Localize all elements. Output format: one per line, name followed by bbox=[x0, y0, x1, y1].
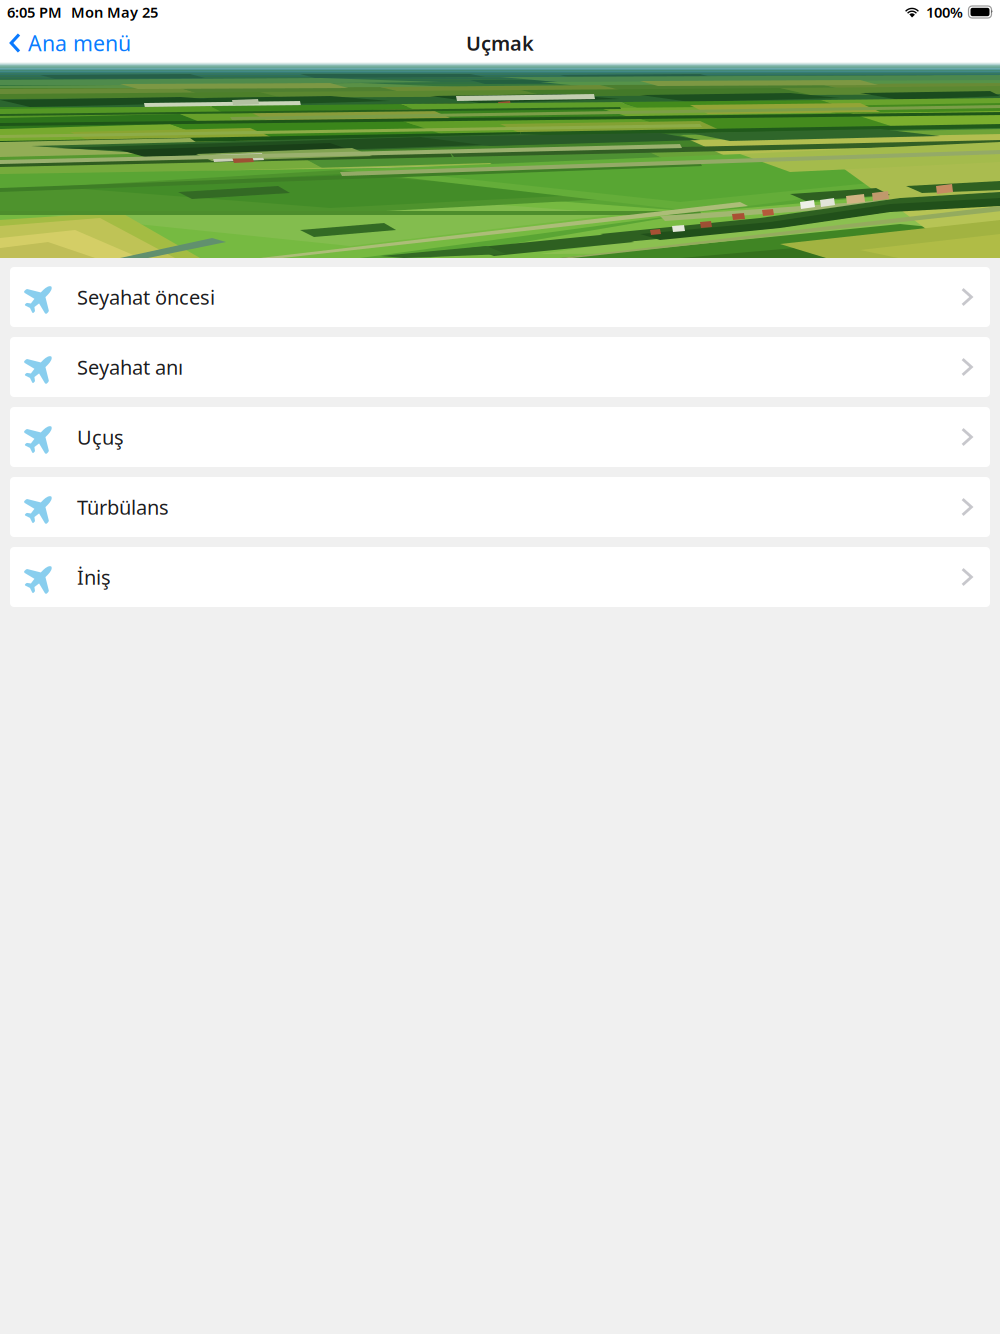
staticText: Mon May 25 bbox=[71, 2, 158, 22]
staticText: 100% bbox=[926, 2, 963, 22]
staticText: Uçuş bbox=[77, 424, 124, 450]
staticText: Türbülans bbox=[77, 494, 169, 520]
staticText: Ana menü bbox=[28, 29, 131, 57]
button[interactable]: Uçuş bbox=[10, 407, 990, 467]
button[interactable]: Seyahat öncesi bbox=[10, 267, 990, 327]
staticText: Seyahat öncesi bbox=[77, 284, 215, 310]
button[interactable]: İniş bbox=[10, 547, 990, 607]
button[interactable]: Türbülans bbox=[10, 477, 990, 537]
button[interactable]: Ana menü bbox=[0, 24, 140, 62]
staticText: Uçmak bbox=[466, 30, 534, 56]
staticText: 6:05 PM bbox=[7, 2, 62, 22]
button[interactable]: Seyahat anı bbox=[10, 337, 990, 397]
staticText: Seyahat anı bbox=[77, 354, 183, 380]
staticText: İniş bbox=[77, 564, 111, 590]
